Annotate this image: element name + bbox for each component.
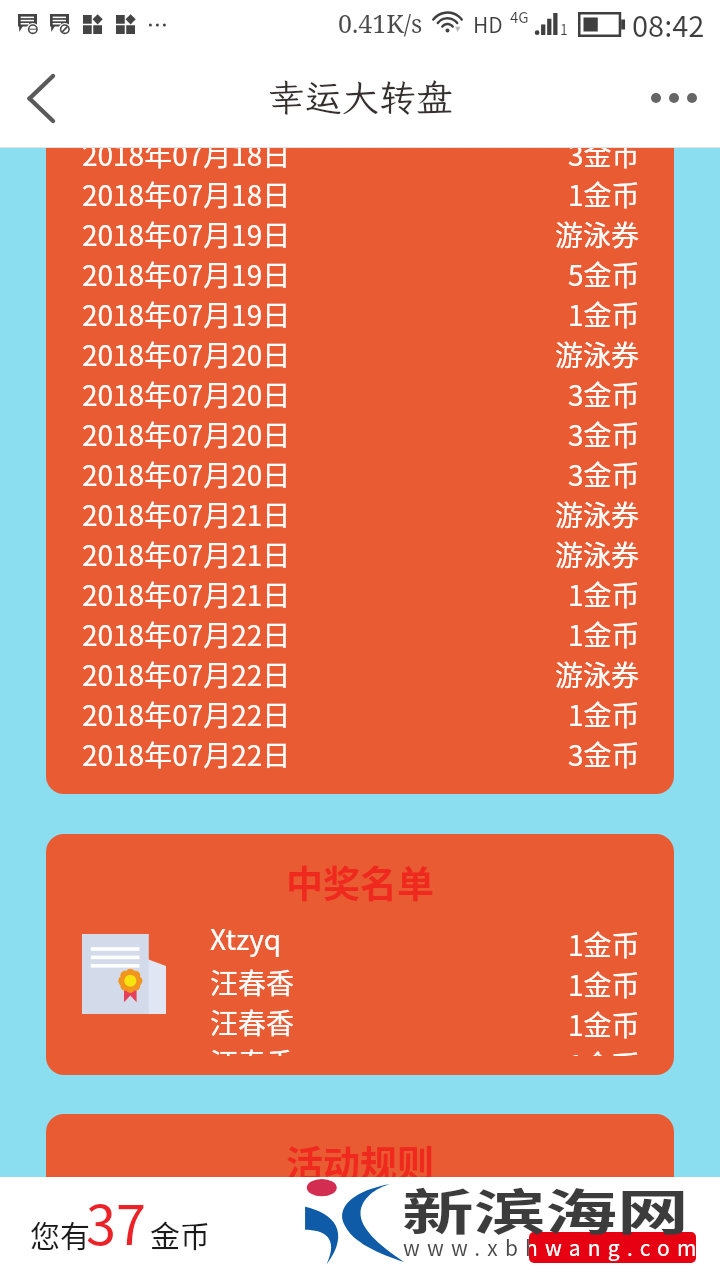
staticText: 2018年07月20日 bbox=[82, 334, 291, 374]
button[interactable]: 2018年07月22日 bbox=[82, 694, 640, 734]
staticText: 2018年07月22日 bbox=[82, 694, 291, 734]
button[interactable]: Xtzyq bbox=[210, 918, 640, 958]
button[interactable]: 2018年07月22日 bbox=[82, 734, 640, 774]
button[interactable]: 2018年07月22日 bbox=[82, 614, 640, 654]
staticText: 金币 bbox=[150, 1212, 210, 1255]
button[interactable]: 2018年07月19日 bbox=[82, 254, 640, 294]
staticText: 活动规则 bbox=[286, 1135, 434, 1177]
staticText: 游泳券 bbox=[555, 214, 640, 254]
button[interactable]: Back bbox=[0, 48, 86, 148]
button[interactable]: 2018年07月18日 bbox=[82, 148, 640, 174]
staticText: www.xbhwang.com bbox=[403, 1232, 704, 1262]
staticText: 1金币 bbox=[568, 964, 640, 1004]
staticText: 4G bbox=[510, 6, 529, 28]
button[interactable]: 2018年07月19日 bbox=[82, 294, 640, 334]
staticText: 1金币 bbox=[568, 174, 640, 214]
button[interactable]: 2018年07月21日 bbox=[82, 534, 640, 574]
staticText: 游泳券 bbox=[555, 654, 640, 694]
staticText: 1金币 bbox=[568, 924, 640, 964]
staticText: Xtzyq bbox=[210, 918, 282, 958]
staticText: 汪春香 bbox=[210, 1042, 295, 1056]
button[interactable]: 2018年07月18日 bbox=[82, 174, 640, 214]
button[interactable]: 汪春香 bbox=[210, 998, 640, 1038]
staticText: 1金币 bbox=[568, 1004, 640, 1044]
staticText: 游泳券 bbox=[555, 494, 640, 534]
staticText: 3金币 bbox=[568, 454, 640, 494]
staticText: 1金币 bbox=[568, 614, 640, 654]
staticText: 08:42 bbox=[632, 3, 705, 45]
staticText: 2018年07月19日 bbox=[82, 254, 291, 294]
button[interactable]: More options bbox=[630, 48, 720, 148]
staticText: 2018年07月21日 bbox=[82, 494, 291, 534]
staticText: 37 bbox=[86, 1182, 146, 1260]
staticText: HD bbox=[473, 9, 503, 39]
staticText: 汪春香 bbox=[210, 1002, 295, 1042]
staticText: 2018年07月22日 bbox=[82, 734, 291, 774]
staticText: 游泳券 bbox=[555, 334, 640, 374]
staticText: 1金币 bbox=[568, 1044, 640, 1056]
staticText: 2018年07月18日 bbox=[82, 148, 291, 174]
button[interactable]: 2018年07月20日 bbox=[82, 334, 640, 374]
staticText: 3金币 bbox=[568, 414, 640, 454]
button[interactable]: 2018年07月21日 bbox=[82, 574, 640, 614]
staticText: 1金币 bbox=[568, 294, 640, 334]
staticText: 2018年07月22日 bbox=[82, 654, 291, 694]
staticText: 3金币 bbox=[568, 148, 640, 174]
staticText: 2018年07月20日 bbox=[82, 454, 291, 494]
staticText: 2018年07月18日 bbox=[82, 174, 291, 214]
button[interactable]: 汪春香 bbox=[210, 1038, 640, 1056]
staticText: 2018年07月21日 bbox=[82, 574, 291, 614]
staticText: 2018年07月19日 bbox=[82, 214, 291, 254]
staticText: 1 bbox=[560, 19, 568, 39]
button[interactable]: 2018年07月20日 bbox=[82, 454, 640, 494]
staticText: 2018年07月22日 bbox=[82, 614, 291, 654]
staticText: 5金币 bbox=[568, 254, 640, 294]
staticText: 幸运大转盘 bbox=[268, 73, 453, 122]
staticText: 汪春香 bbox=[210, 962, 295, 1002]
button[interactable]: 2018年07月22日 bbox=[82, 654, 640, 694]
button[interactable]: 2018年07月20日 bbox=[82, 374, 640, 414]
staticText: 2018年07月20日 bbox=[82, 374, 291, 414]
staticText: 您有 bbox=[30, 1212, 90, 1255]
button[interactable]: 汪春香 bbox=[210, 958, 640, 998]
staticText: 新滨海网 bbox=[402, 1173, 689, 1244]
staticText: 0.41K/s bbox=[338, 6, 423, 40]
staticText: 1金币 bbox=[568, 574, 640, 614]
button[interactable]: 2018年07月21日 bbox=[82, 494, 640, 534]
button[interactable]: 2018年07月19日 bbox=[82, 214, 640, 254]
staticText: 2018年07月21日 bbox=[82, 534, 291, 574]
staticText: 3金币 bbox=[568, 734, 640, 774]
button[interactable]: 2018年07月20日 bbox=[82, 414, 640, 454]
staticText: 2018年07月20日 bbox=[82, 414, 291, 454]
staticText: 游泳券 bbox=[555, 534, 640, 574]
button[interactable]: 活动规则 bbox=[46, 1114, 674, 1177]
staticText: 中奖名单 bbox=[286, 855, 434, 909]
staticText: 2018年07月19日 bbox=[82, 294, 291, 334]
staticText: www.xbhwang.com bbox=[403, 1232, 704, 1262]
staticText: 3金币 bbox=[568, 374, 640, 414]
staticText: 1金币 bbox=[568, 694, 640, 734]
